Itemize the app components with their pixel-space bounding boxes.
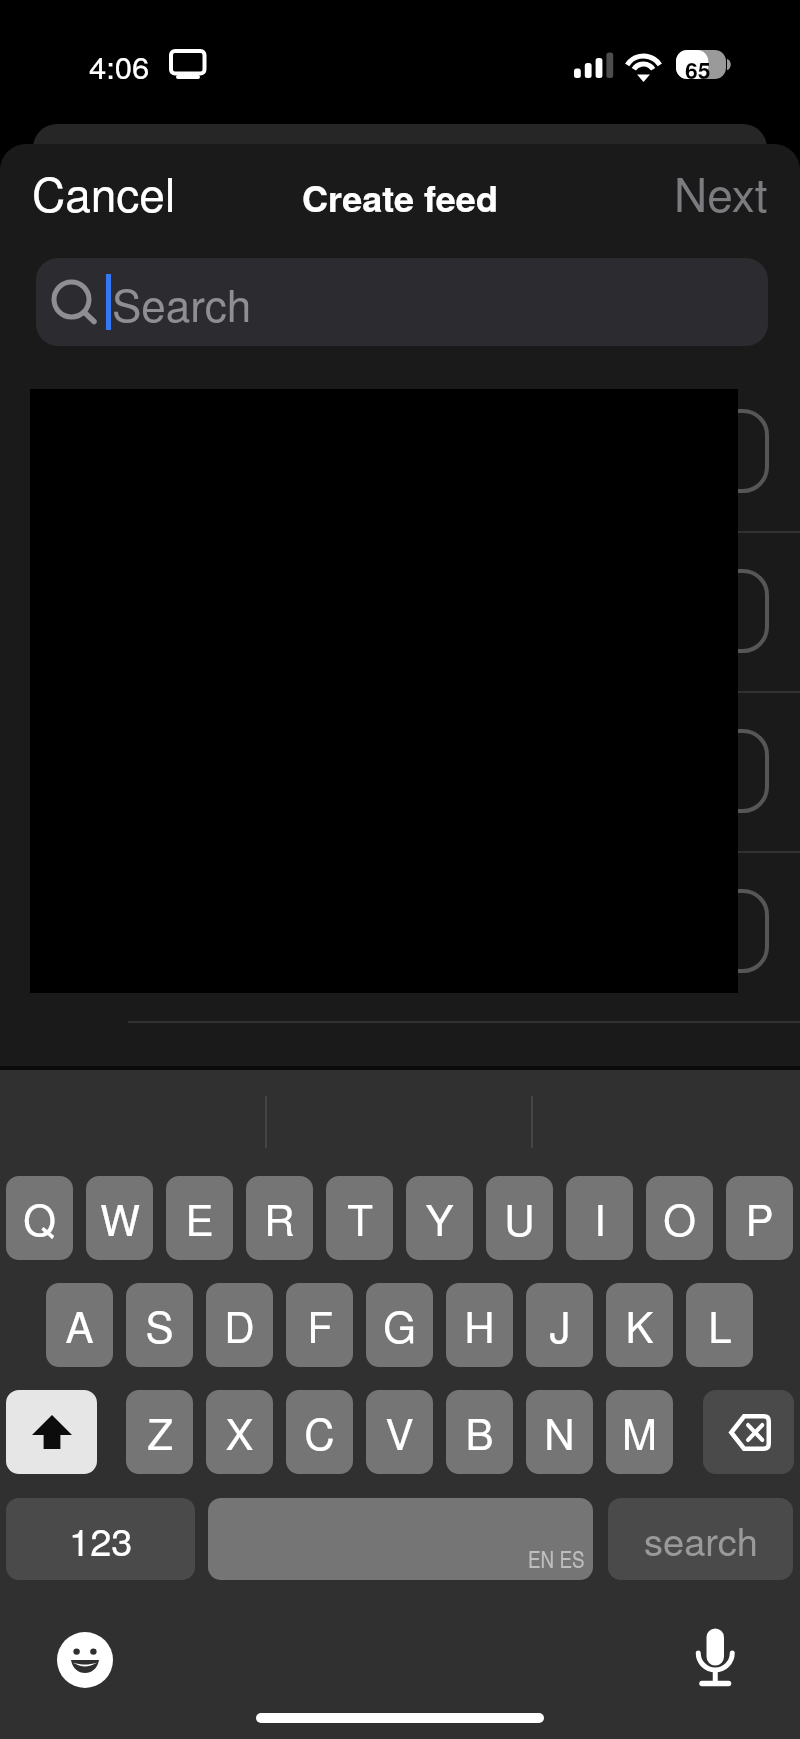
button[interactable]: W (86, 1176, 153, 1260)
button[interactable]: S (126, 1283, 193, 1367)
button[interactable]: G (366, 1283, 433, 1367)
button[interactable]: 123 (6, 1498, 195, 1580)
button[interactable]: F (286, 1283, 353, 1367)
button[interactable] (0, 372, 800, 532)
button[interactable]: U (486, 1176, 553, 1260)
button[interactable]: A (46, 1283, 113, 1367)
staticText: 123 (69, 1512, 133, 1566)
button[interactable]: B (446, 1390, 513, 1474)
staticText: Create feed (302, 171, 498, 223)
staticText: T (347, 1188, 373, 1248)
staticText: A (65, 1295, 94, 1355)
staticText: EN ES (528, 1543, 585, 1575)
staticText: W (100, 1188, 140, 1248)
staticText: R (264, 1188, 295, 1248)
button[interactable]: V (366, 1390, 433, 1474)
button[interactable]: O (646, 1176, 713, 1260)
button[interactable] (0, 532, 800, 692)
button[interactable]: L (686, 1283, 753, 1367)
staticText: N (544, 1402, 575, 1462)
button[interactable] (0, 852, 800, 1012)
button[interactable]: K (606, 1283, 673, 1367)
staticText: S (145, 1295, 174, 1355)
staticText: search (644, 1512, 758, 1566)
staticText: P (745, 1188, 774, 1248)
staticText: 65 (685, 53, 711, 86)
button[interactable]: Next (642, 145, 800, 239)
button[interactable]: T (326, 1176, 393, 1260)
button[interactable]: Dictate (694, 1626, 736, 1688)
button[interactable] (0, 692, 800, 852)
staticText: U (504, 1188, 535, 1248)
button[interactable]: D (206, 1283, 273, 1367)
staticText: F (307, 1295, 333, 1355)
staticText: L (708, 1295, 732, 1355)
staticText: X (225, 1402, 254, 1462)
staticText: Q (23, 1188, 56, 1248)
button[interactable]: Z (126, 1390, 193, 1474)
staticText: 4:06 (89, 43, 150, 87)
button[interactable]: E (166, 1176, 233, 1260)
button[interactable]: J (526, 1283, 593, 1367)
staticText: O (663, 1188, 696, 1248)
button[interactable]: Search (36, 258, 768, 346)
staticText: B (465, 1402, 494, 1462)
button[interactable]: I (566, 1176, 633, 1260)
button[interactable]: Shift (6, 1390, 97, 1474)
button[interactable]: Backspace (703, 1390, 794, 1474)
staticText: C (304, 1402, 335, 1462)
staticText: Cancel (32, 159, 176, 225)
button[interactable]: search (608, 1498, 793, 1580)
staticText: D (224, 1295, 255, 1355)
button[interactable]: P (726, 1176, 793, 1260)
button[interactable]: C (286, 1390, 353, 1474)
staticText: H (464, 1295, 495, 1355)
staticText: Next (674, 159, 768, 225)
staticText: Y (425, 1188, 454, 1248)
staticText: V (385, 1402, 414, 1462)
button[interactable]: Q (6, 1176, 73, 1260)
staticText: Z (147, 1402, 173, 1462)
button[interactable]: H (446, 1283, 513, 1367)
staticText: M (622, 1402, 657, 1462)
button[interactable]: Space (208, 1498, 593, 1580)
staticText: J (549, 1295, 571, 1355)
button[interactable]: Y (406, 1176, 473, 1260)
button[interactable]: N (526, 1390, 593, 1474)
staticText: E (185, 1188, 214, 1248)
staticText: Search (112, 271, 252, 334)
staticText: K (625, 1295, 654, 1355)
button[interactable]: M (606, 1390, 673, 1474)
staticText: G (383, 1295, 416, 1355)
button[interactable]: Emoji (57, 1632, 113, 1688)
staticText: I (594, 1188, 606, 1248)
button[interactable]: R (246, 1176, 313, 1260)
button[interactable]: Cancel (0, 145, 212, 239)
button[interactable]: X (206, 1390, 273, 1474)
